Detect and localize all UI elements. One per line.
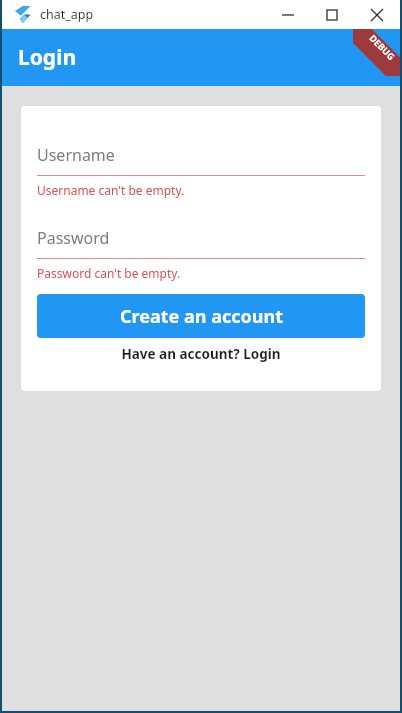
button[interactable]: Maximize [310,0,354,29]
button[interactable]: Have an account? Login [37,338,365,370]
button[interactable]: Password [37,227,365,281]
button[interactable]: Close [354,0,400,29]
staticText: Create an account [120,304,283,329]
staticText: Password [37,227,110,249]
button[interactable]: Create an account [37,294,365,338]
staticText: chat_app [40,6,94,23]
staticText: Username [37,144,115,166]
staticText: Username can't be empty. [37,182,185,198]
staticText: DEBUG [367,32,398,62]
staticText: Password can't be empty. [37,265,181,281]
staticText: Login [18,43,77,72]
staticText: Have an account? Login [121,345,281,363]
button[interactable]: Minimize [266,0,310,29]
button[interactable]: Username [37,144,365,198]
